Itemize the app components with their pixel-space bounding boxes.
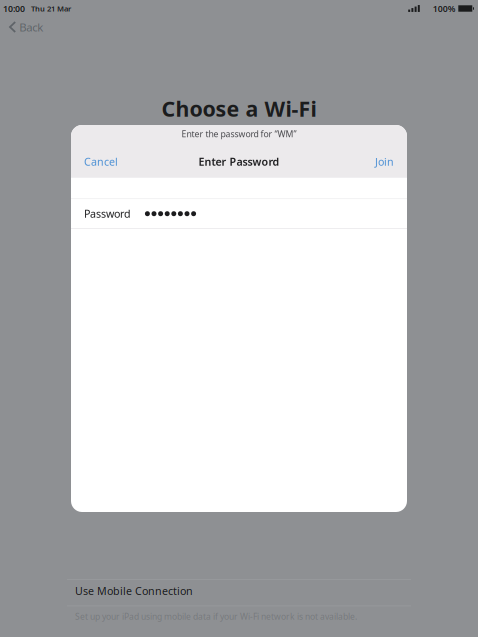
staticText: Back	[19, 19, 43, 35]
staticText: 100%	[433, 2, 456, 14]
button[interactable]: Join	[370, 150, 399, 173]
staticText: Choose a Wi-Fi	[161, 94, 316, 123]
staticText: Set up your iPad using mobile data if yo…	[75, 611, 357, 622]
staticText: Password	[84, 206, 131, 221]
staticText: Enter Password	[198, 154, 279, 169]
staticText: Use Mobile Connection	[75, 584, 193, 598]
staticText: Enter the password for “WM”	[181, 128, 296, 140]
button[interactable]: Back	[1, 14, 51, 40]
staticText: Cancel	[84, 154, 118, 169]
staticText: Join	[375, 154, 394, 169]
staticText: Thu 21 Mar	[31, 3, 71, 14]
button[interactable]: Cancel	[79, 150, 123, 173]
staticText: 10:00	[3, 2, 25, 14]
button[interactable]: Use Mobile Connection	[67, 580, 411, 606]
